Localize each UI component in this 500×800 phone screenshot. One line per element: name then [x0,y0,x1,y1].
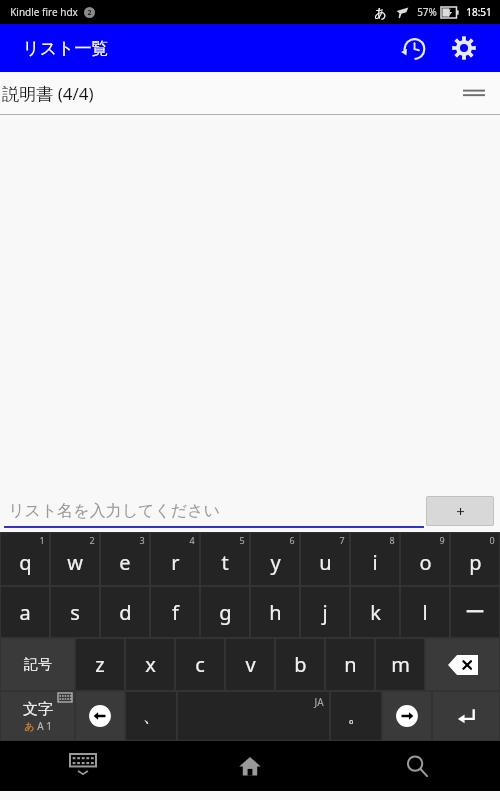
staticText: 説明書 (4/4) [2,82,94,105]
staticText: 0 [489,534,495,546]
button[interactable]: u [300,532,350,586]
button[interactable]: o [400,532,450,586]
staticText: o [419,549,432,576]
staticText: 5 [239,534,245,546]
staticText: l [422,599,428,626]
staticText: 2 [89,534,95,546]
button[interactable]: h [250,586,300,638]
button[interactable]: n [325,638,375,691]
button[interactable]: + [426,496,494,526]
staticText: k [370,599,381,626]
button[interactable]: Backspace [425,638,500,691]
button[interactable]: i [350,532,400,586]
staticText: 4 [189,534,195,546]
staticText: 1 [46,719,52,733]
button[interactable]: 文字 [0,691,75,741]
staticText: d [119,599,132,626]
button[interactable]: s [50,586,100,638]
staticText: 6 [289,534,295,546]
staticText: あ [24,720,35,733]
staticText: w [67,549,83,576]
staticText: b [294,651,307,678]
button[interactable]: a [0,586,50,638]
button[interactable]: c [175,638,225,691]
staticText: h [269,599,282,626]
button[interactable]: Space [177,691,330,741]
staticText: 3 [139,534,145,546]
staticText: z [95,651,105,678]
button[interactable]: y [250,532,300,586]
other: Reorder [456,75,492,111]
button[interactable]: g [200,586,250,638]
button[interactable]: 説明書 (4/4) [0,72,500,114]
button[interactable]: 記号 [0,638,75,691]
button[interactable]: j [300,586,350,638]
button[interactable]: e [100,532,150,586]
button[interactable]: Cursor right [382,691,432,741]
button[interactable]: 、 [125,691,177,741]
staticText: 記号 [24,656,52,674]
staticText: ー [465,600,485,625]
staticText: リスト一覧 [22,38,109,59]
button[interactable]: History [392,26,436,70]
button[interactable]: x [125,638,175,691]
button[interactable]: Cursor left [75,691,125,741]
staticText: c [195,651,205,678]
staticText: x [145,651,156,678]
staticText: + [456,501,465,521]
button[interactable]: p [450,532,500,586]
button[interactable]: t [200,532,250,586]
button[interactable]: ー [450,586,500,638]
staticText: f [172,599,179,626]
staticText: 2 [87,8,92,18]
button[interactable]: d [100,586,150,638]
staticText: Kindle fire hdx [10,5,78,19]
staticText: 18:51 [466,5,492,19]
button[interactable]: r [150,532,200,586]
staticText: 8 [389,534,395,546]
staticText: j [322,599,328,626]
staticText: 1 [39,534,45,546]
staticText: 57% [417,5,437,19]
staticText: a [19,599,31,626]
staticText: t [221,549,229,576]
staticText: あ [374,5,387,20]
staticText: g [219,599,232,626]
button[interactable]: z [75,638,125,691]
staticText: r [171,549,180,576]
button[interactable]: Search [333,741,500,791]
staticText: 。 [348,706,365,727]
button[interactable]: k [350,586,400,638]
button[interactable]: m [375,638,425,691]
button[interactable]: w [50,532,100,586]
staticText: 7 [339,534,345,546]
staticText: 9 [439,534,445,546]
button[interactable]: Home [166,741,333,791]
staticText: p [469,549,482,576]
staticText: u [319,549,332,576]
staticText: e [119,549,131,576]
button[interactable]: l [400,586,450,638]
staticText: m [391,651,410,678]
button[interactable]: b [275,638,325,691]
button[interactable]: f [150,586,200,638]
staticText: n [344,651,357,678]
button[interactable]: Enter [432,691,500,741]
staticText: q [19,549,32,576]
staticText: JA [314,695,324,709]
button[interactable]: Hide keyboard [0,741,166,791]
staticText: A [37,719,44,733]
button[interactable]: q [0,532,50,586]
staticText: y [270,549,281,576]
button[interactable]: v [225,638,275,691]
staticText: s [70,599,80,626]
button[interactable]: 。 [330,691,382,741]
staticText: 、 [143,706,160,727]
button[interactable]: リスト名を入力してください [4,494,424,528]
button[interactable]: Settings [442,26,486,70]
staticText: リスト名を入力してください [8,501,220,521]
staticText: i [372,549,378,576]
staticText: v [245,651,256,678]
staticText: 文字 [23,700,53,719]
